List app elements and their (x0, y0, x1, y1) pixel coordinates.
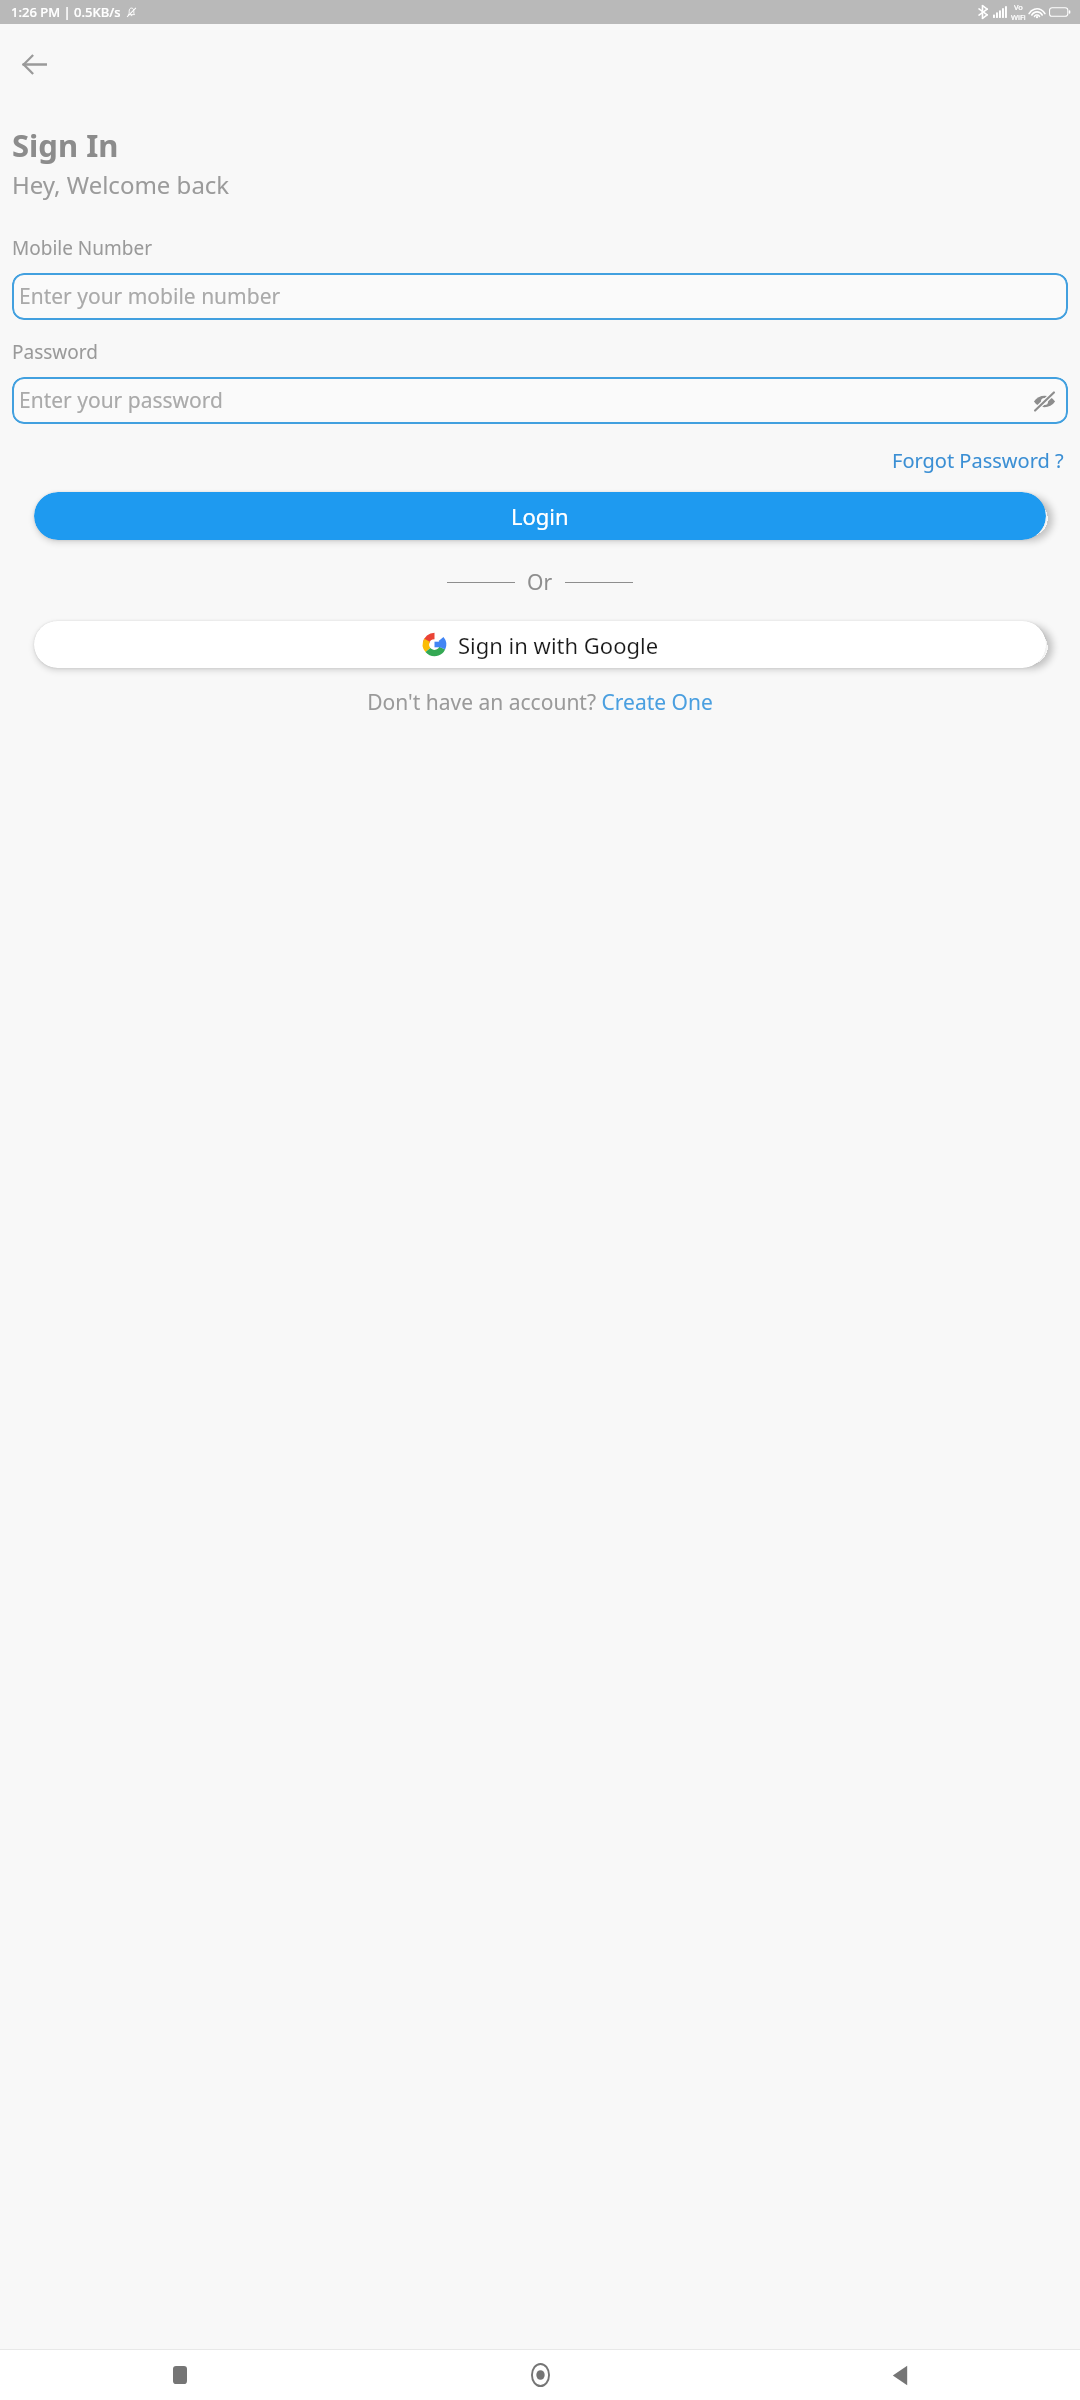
staticText: WiFi (1011, 12, 1026, 22)
staticText: Vo (1014, 2, 1023, 12)
staticText: Forgot Password ? (892, 447, 1064, 474)
staticText: Mobile Number (12, 235, 153, 261)
staticText: Hey, Welcome back (12, 168, 230, 201)
button[interactable]: Back (720, 2350, 1080, 2400)
staticText: Don't have an account? Create One (367, 688, 713, 717)
staticText: Sign In (12, 124, 119, 166)
button[interactable]: Forgot Password ? (888, 443, 1068, 478)
button[interactable]: Login (34, 492, 1046, 540)
button[interactable]: Sign in with Google (34, 621, 1046, 668)
staticText: Or (527, 568, 553, 597)
staticText: Password (12, 339, 98, 365)
staticText: Enter your password (19, 386, 1027, 415)
button[interactable]: Enter your mobile number (12, 273, 1068, 320)
button[interactable]: Enter your password (12, 377, 1068, 424)
button[interactable]: Back (6, 36, 62, 92)
staticText: 1:26 PM | 0.5KB/s (11, 3, 121, 21)
button[interactable]: Home (360, 2350, 720, 2400)
staticText: Enter your mobile number (19, 282, 1061, 311)
staticText: Sign in with Google (458, 630, 659, 660)
button[interactable]: Recent apps (0, 2350, 360, 2400)
staticText: Login (511, 501, 569, 531)
button[interactable]: Don't have an account? Create One (367, 688, 713, 717)
button[interactable]: Show password (1027, 384, 1061, 418)
